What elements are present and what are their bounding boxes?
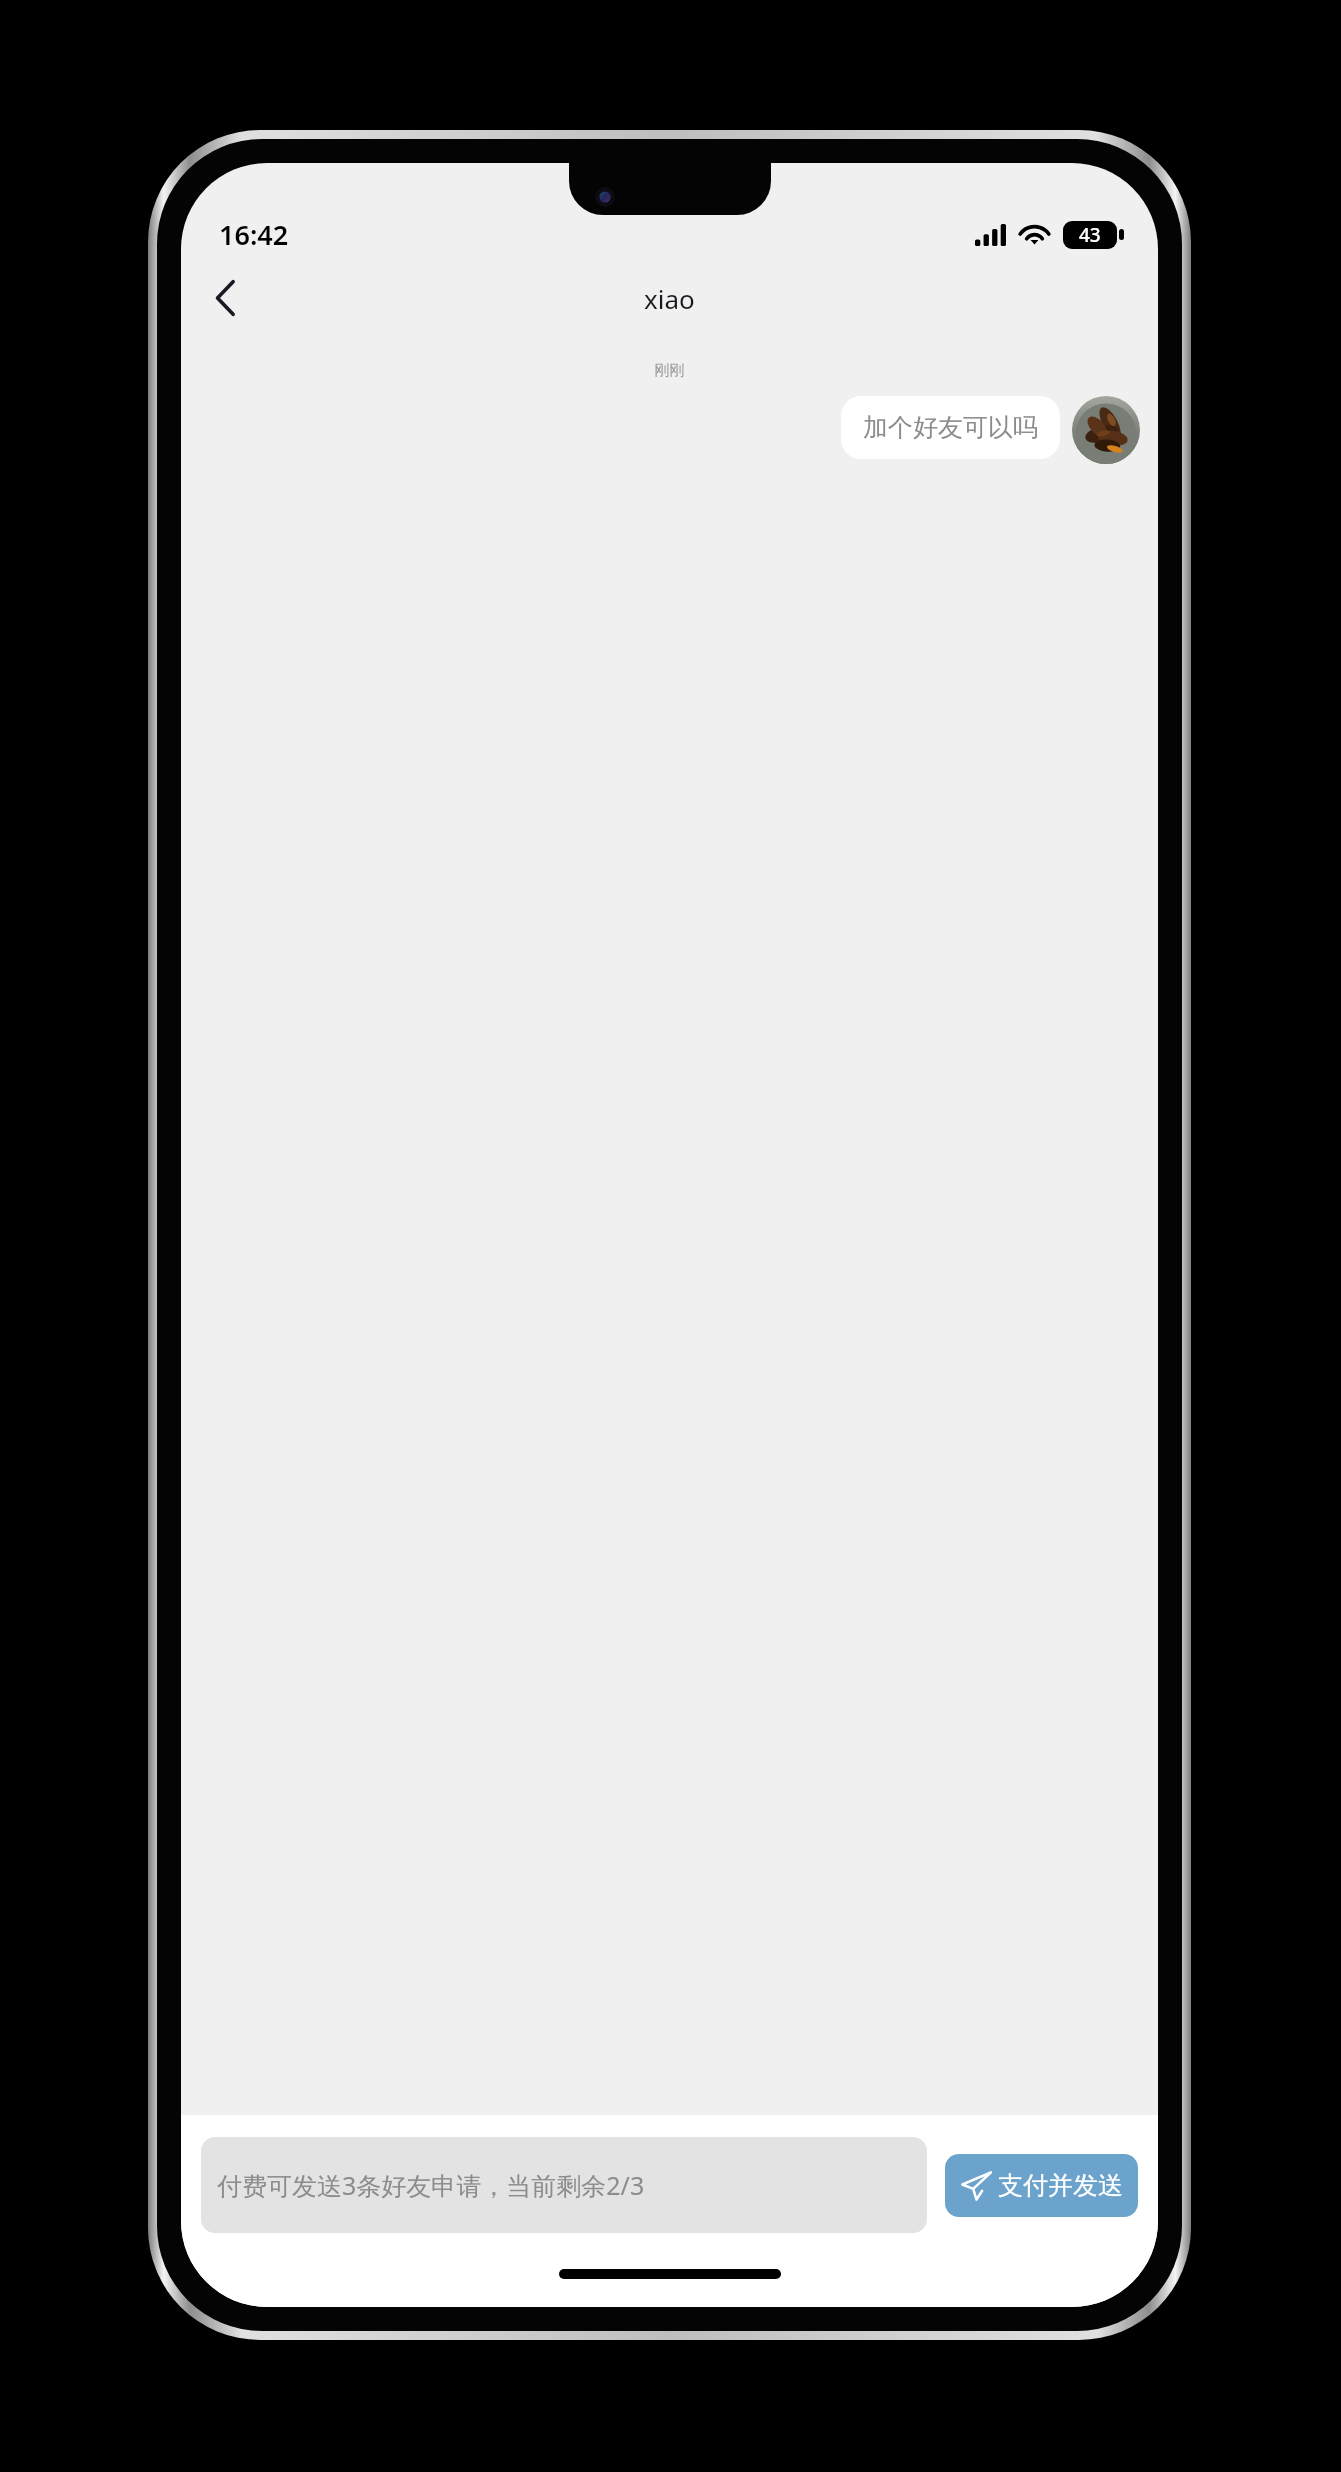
- staticText: 付费可发送3条好友申请，当前剩余2/3: [217, 2168, 645, 2202]
- staticText: 支付并发送: [998, 2170, 1123, 2201]
- staticText: 加个好友可以吗: [863, 412, 1038, 443]
- button[interactable]: 加个好友可以吗: [841, 396, 1060, 459]
- staticText: 16:42: [219, 216, 289, 253]
- button[interactable]: 支付并发送: [945, 2154, 1138, 2217]
- staticText: xiao: [644, 281, 695, 316]
- button[interactable]: Back: [195, 268, 255, 328]
- button[interactable]: 付费可发送3条好友申请，当前剩余2/3: [201, 2137, 927, 2233]
- staticText: 43: [1079, 222, 1101, 248]
- button[interactable]: Avatar: [1072, 396, 1140, 464]
- staticText: 刚刚: [181, 361, 1158, 380]
